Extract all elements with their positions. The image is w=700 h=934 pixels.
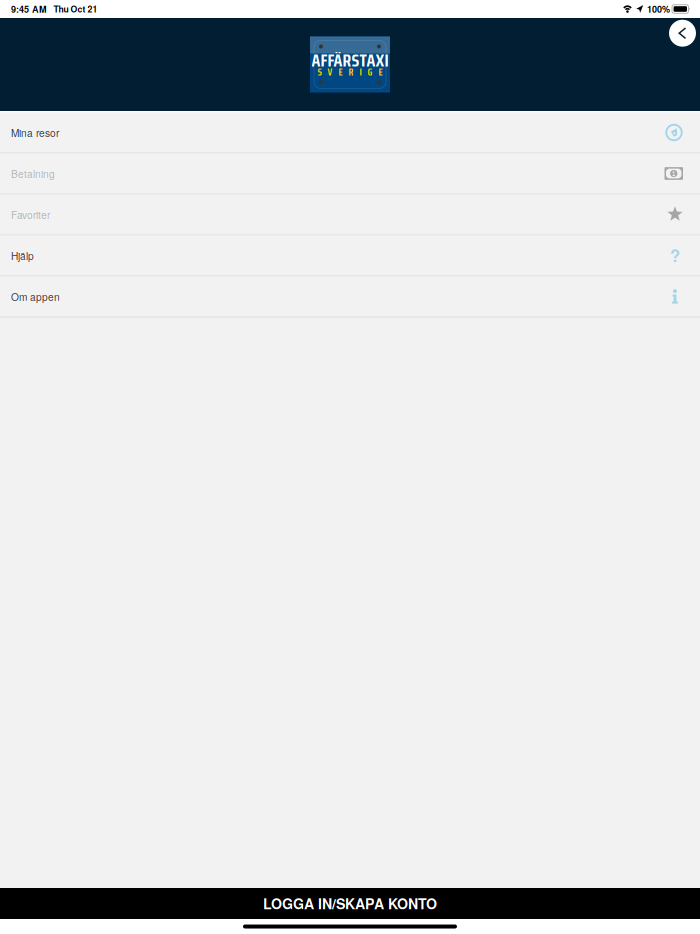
staticText: I [359,64,361,80]
button[interactable]: Back [667,19,698,48]
button[interactable]: Betalning [0,153,700,194]
staticText: 100% [647,2,670,15]
button[interactable]: Om appen [0,276,700,317]
staticText: Hjälp [11,248,34,263]
staticText: V [327,64,332,80]
staticText: Mina resor [11,125,59,140]
button[interactable]: LOGGA IN/SKAPA KONTO [0,888,700,919]
staticText: R [348,64,353,80]
staticText: G [367,64,372,80]
staticText: S [317,64,321,80]
button[interactable]: Mina resor [0,112,700,153]
staticText: ? [670,244,680,267]
staticText: E [338,64,342,80]
staticText: Om appen [11,289,60,304]
staticText: LOGGA IN/SKAPA KONTO [263,893,437,914]
staticText: AFFÄRSTAXI [311,47,388,74]
button[interactable]: Hjälp [0,235,700,276]
button[interactable]: Favoriter [0,194,700,235]
staticText: 9:45 AM [11,2,47,15]
staticText: Betalning [11,166,55,181]
staticText: E [378,64,382,80]
staticText: Thu Oct 21 [53,3,97,15]
staticText: Favoriter [11,207,50,222]
